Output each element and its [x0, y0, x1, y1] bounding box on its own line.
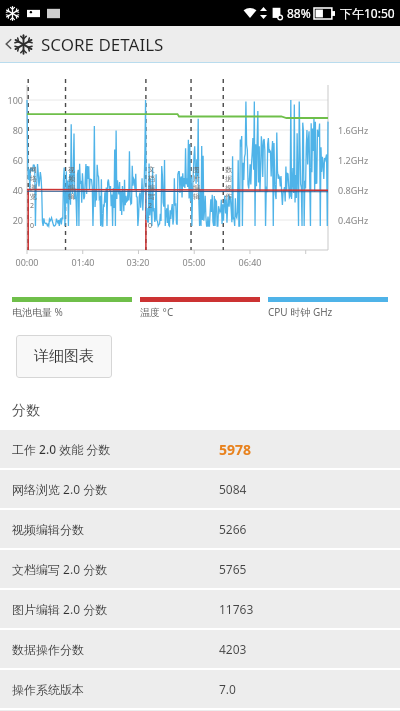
staticText: 05:00 — [176, 256, 212, 268]
staticText: 图片编辑 2.0 分数 — [12, 601, 219, 617]
button[interactable]: 详细图表 — [16, 335, 112, 378]
staticText: 辑 — [193, 192, 200, 201]
staticText: 00:00 — [9, 256, 45, 268]
staticText: 1.6GHz — [338, 124, 369, 136]
staticText: 络 — [30, 174, 37, 183]
staticText: . — [148, 211, 150, 221]
staticText: CPU 时钟 GHz — [268, 305, 333, 319]
staticText: 数据操作分数 — [12, 642, 219, 657]
staticText: 视频编辑分数 — [12, 522, 219, 537]
staticText: 辑 — [68, 192, 75, 201]
staticText: 文 — [148, 165, 155, 174]
staticText: 0 — [148, 221, 153, 231]
staticText: 档 — [148, 174, 155, 183]
staticText: . — [30, 211, 32, 221]
staticText: 电池电量 % — [12, 305, 63, 319]
staticText: 温度 °C — [140, 305, 174, 319]
staticText: 100 — [0, 94, 23, 106]
staticText: 浏 — [30, 183, 37, 192]
staticText: 4203 — [219, 641, 388, 657]
staticText: 88% — [287, 5, 311, 21]
staticText: 20 — [0, 214, 23, 226]
staticText: 频 — [68, 174, 75, 183]
button[interactable]: 视频编辑分数 — [0, 510, 400, 548]
staticText: 工作 2.0 效能 分数 — [12, 441, 219, 457]
staticText: 11763 — [219, 601, 388, 617]
staticText: 2 — [30, 201, 35, 211]
staticText: 写 — [148, 192, 155, 201]
button[interactable]: 数据操作分数 — [0, 630, 400, 668]
button[interactable]: 网络浏览 2.0 分数 — [0, 470, 400, 508]
staticText: 览 — [30, 192, 37, 201]
staticText: 片 — [193, 174, 200, 183]
button[interactable]: 工作 2.0 效能 分数 — [0, 430, 400, 468]
staticText: 5084 — [219, 481, 388, 497]
staticText: 1.2GHz — [338, 154, 369, 166]
staticText: SCORE DETAILS — [41, 33, 164, 56]
staticText: 详细图表 — [34, 347, 94, 366]
staticText: 0.4GHz — [338, 214, 369, 226]
staticText: 图 — [193, 165, 200, 174]
staticText: 分数 — [12, 402, 40, 420]
staticText: 40 — [0, 184, 23, 196]
staticText: 作 — [225, 192, 232, 201]
staticText: 编 — [193, 183, 200, 192]
staticText: 文档编写 2.0 分数 — [12, 561, 219, 577]
staticText: 5266 — [219, 521, 388, 537]
staticText: 编 — [148, 183, 155, 192]
staticText: 60 — [0, 154, 23, 166]
staticText: 数 — [225, 165, 232, 174]
staticText: 01:40 — [65, 256, 101, 268]
staticText: 7.0 — [219, 681, 388, 697]
staticText: 编 — [68, 183, 75, 192]
button[interactable]: 文档编写 2.0 分数 — [0, 550, 400, 588]
staticText: 80 — [0, 124, 23, 136]
staticText: 网 — [30, 165, 37, 174]
button[interactable]: 图片编辑 2.0 分数 — [0, 590, 400, 628]
staticText: 5765 — [219, 561, 388, 577]
staticText: 操 — [225, 183, 232, 192]
staticText: 5978 — [219, 440, 388, 459]
staticText: 操作系统版本 — [12, 682, 219, 697]
staticText: 据 — [225, 174, 232, 183]
button[interactable]: Back — [0, 26, 400, 62]
staticText: 0 — [30, 221, 35, 231]
staticText: 0.8GHz — [338, 184, 369, 196]
staticText: 下午10:50 — [340, 5, 395, 21]
staticText: 2 — [148, 201, 153, 211]
button[interactable]: 操作系统版本 — [0, 670, 400, 708]
staticText: 网络浏览 2.0 分数 — [12, 481, 219, 497]
staticText: 03:20 — [120, 256, 156, 268]
staticText: 视 — [68, 165, 75, 174]
staticText: 06:40 — [232, 256, 268, 268]
